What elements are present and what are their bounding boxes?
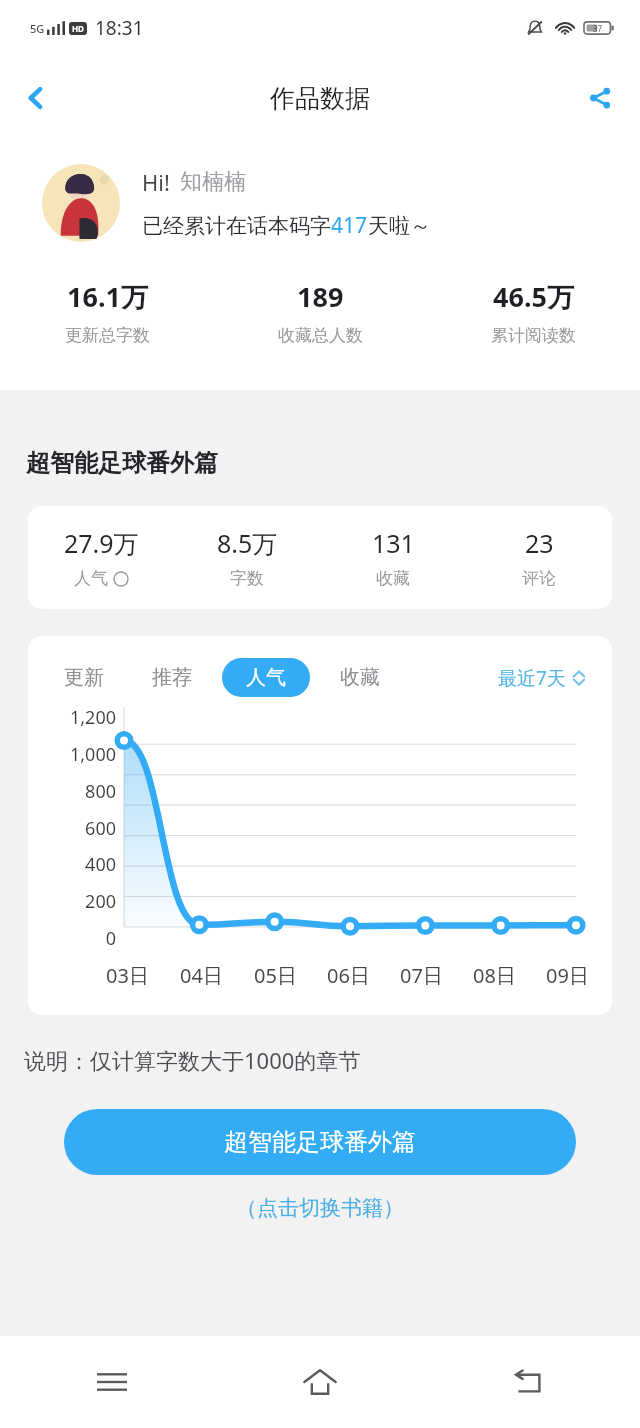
button[interactable]: 27.9万 bbox=[28, 526, 174, 589]
staticText: 字数 bbox=[230, 568, 264, 589]
staticText: 已经累计在话本码字 bbox=[142, 213, 331, 239]
staticText: 27.9万 bbox=[64, 526, 139, 560]
staticText: 18:31 bbox=[95, 15, 144, 41]
staticText: 8.5万 bbox=[217, 526, 278, 560]
staticText: 评论 bbox=[522, 568, 556, 589]
staticText: 最近7天 bbox=[498, 665, 566, 691]
staticText: 0 bbox=[105, 926, 116, 951]
staticText: 超智能足球番外篇 bbox=[224, 1127, 416, 1157]
button[interactable]: 推荐 bbox=[150, 658, 194, 697]
button[interactable]: （点击切换书籍） bbox=[232, 1191, 408, 1225]
staticText: 收藏 bbox=[376, 568, 410, 589]
staticText: 更新总字数 bbox=[65, 325, 150, 346]
staticText: Hi! bbox=[142, 167, 170, 197]
button[interactable]: 收藏 bbox=[338, 658, 382, 697]
button[interactable]: Home bbox=[288, 1350, 352, 1414]
staticText: 05日 bbox=[254, 962, 297, 989]
staticText: 累计阅读数 bbox=[491, 325, 576, 346]
staticText: 人气 bbox=[246, 665, 286, 690]
staticText: 08日 bbox=[473, 962, 516, 989]
button[interactable]: 189 bbox=[214, 278, 427, 346]
button[interactable]: 超智能足球番外篇 bbox=[64, 1109, 576, 1175]
staticText: 知楠楠 bbox=[180, 168, 246, 196]
button[interactable]: Back bbox=[10, 72, 62, 124]
staticText: 天啦～ bbox=[368, 213, 431, 239]
staticText: 800 bbox=[85, 779, 116, 804]
button[interactable]: 16.1万 bbox=[0, 278, 214, 346]
button[interactable]: 23 bbox=[466, 526, 612, 589]
staticText: 09日 bbox=[546, 962, 589, 989]
staticText: 超智能足球番外篇 bbox=[26, 448, 218, 478]
staticText: （点击切换书籍） bbox=[236, 1195, 404, 1221]
button[interactable]: 46.5万 bbox=[427, 278, 640, 346]
staticText: 1,200 bbox=[69, 705, 116, 730]
staticText: 37 bbox=[593, 23, 603, 34]
staticText: 作品数据 bbox=[270, 83, 370, 114]
staticText: 推荐 bbox=[152, 665, 192, 690]
button[interactable]: 最近7天 bbox=[494, 661, 590, 695]
staticText: 16.1万 bbox=[67, 278, 148, 315]
staticText: 131 bbox=[372, 526, 415, 560]
staticText: 200 bbox=[85, 889, 116, 914]
staticText: 1,000 bbox=[69, 742, 116, 767]
button[interactable]: Recents bbox=[80, 1350, 144, 1414]
staticText: HD bbox=[72, 23, 84, 34]
staticText: 400 bbox=[85, 852, 116, 877]
staticText: 189 bbox=[297, 278, 344, 315]
staticText: 更新 bbox=[64, 665, 104, 690]
staticText: 46.5万 bbox=[493, 278, 574, 315]
staticText: 06日 bbox=[327, 962, 370, 989]
button[interactable]: 更新 bbox=[62, 658, 106, 697]
button[interactable]: 8.5万 bbox=[174, 526, 320, 589]
button[interactable]: Back bbox=[496, 1350, 560, 1414]
button[interactable]: 人气 bbox=[222, 658, 310, 697]
button[interactable]: Avatar bbox=[42, 164, 120, 242]
button[interactable]: 131 bbox=[320, 526, 466, 589]
staticText: 417 bbox=[331, 211, 368, 240]
staticText: 04日 bbox=[180, 962, 223, 989]
staticText: 03日 bbox=[106, 962, 149, 989]
staticText: 5G bbox=[30, 21, 45, 36]
staticText: 600 bbox=[85, 816, 116, 841]
staticText: 人气 bbox=[74, 568, 108, 589]
staticText: 收藏总人数 bbox=[278, 325, 363, 346]
button[interactable]: Share bbox=[574, 72, 626, 124]
staticText: 07日 bbox=[400, 962, 443, 989]
staticText: 说明：仅计算字数大于1000的章节 bbox=[24, 1045, 361, 1075]
staticText: 23 bbox=[525, 526, 554, 560]
staticText: 收藏 bbox=[340, 665, 380, 690]
